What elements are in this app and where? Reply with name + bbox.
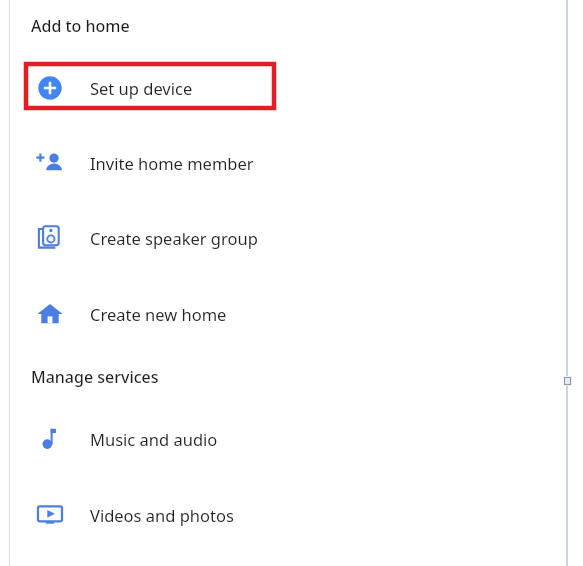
button[interactable]: Create new home — [10, 287, 566, 341]
button[interactable]: Create speaker group — [10, 211, 566, 265]
staticText: Add to home — [31, 15, 130, 37]
staticText: Set up device — [90, 77, 193, 99]
staticText: Create speaker group — [90, 227, 258, 249]
staticText: Manage services — [31, 366, 159, 388]
button[interactable]: Videos and photos — [10, 488, 566, 542]
button[interactable]: Music and audio — [10, 412, 566, 466]
staticText: Create new home — [90, 303, 227, 325]
button[interactable]: Set up device — [10, 61, 566, 115]
staticText: Videos and photos — [90, 504, 234, 526]
staticText: Music and audio — [90, 428, 218, 450]
button[interactable]: Invite home member — [10, 136, 566, 190]
staticText: Invite home member — [90, 152, 254, 174]
